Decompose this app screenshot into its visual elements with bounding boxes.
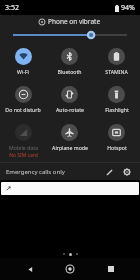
staticText: Bluetooth — [57, 68, 82, 75]
staticText: Do not disturb — [5, 106, 41, 113]
button[interactable]: STAMINA — [93, 44, 140, 82]
button[interactable]: Bluetooth — [46, 44, 93, 82]
staticText: 3:52 — [5, 3, 19, 13]
staticText: Emergency calls only — [6, 168, 65, 176]
button[interactable]: Back — [19, 258, 41, 280]
button[interactable]: Brightness — [0, 28, 140, 42]
button[interactable]: Home — [59, 258, 81, 280]
staticText: Flashlight — [105, 106, 129, 113]
staticText: Mobile data — [9, 144, 38, 151]
button[interactable]: Recents — [100, 258, 122, 280]
staticText: Hotspot — [107, 144, 127, 151]
button[interactable]: Auto-rotate — [46, 82, 93, 120]
button[interactable]: Edit — [102, 165, 116, 179]
button[interactable]: Hotspot — [93, 120, 140, 158]
button[interactable]: Do not disturb — [0, 82, 46, 120]
button[interactable]: Wi-Fi — [0, 44, 46, 82]
staticText: Auto-rotate — [56, 106, 84, 113]
staticText: Phone on vibrate — [48, 17, 101, 26]
staticText: Airplane mode — [52, 144, 88, 151]
button[interactable]: Phone on vibrate — [0, 15, 140, 28]
staticText: 94% — [121, 3, 135, 13]
staticText: STAMINA — [105, 68, 128, 75]
button[interactable]: Mobile data — [0, 120, 46, 158]
staticText: No SIM card — [9, 152, 38, 158]
staticText: Wi-Fi — [17, 68, 29, 75]
button[interactable]: Settings — [120, 165, 134, 179]
button[interactable]: Airplane mode — [46, 120, 93, 158]
button[interactable] — [1, 182, 139, 195]
button[interactable]: Flashlight — [93, 82, 140, 120]
